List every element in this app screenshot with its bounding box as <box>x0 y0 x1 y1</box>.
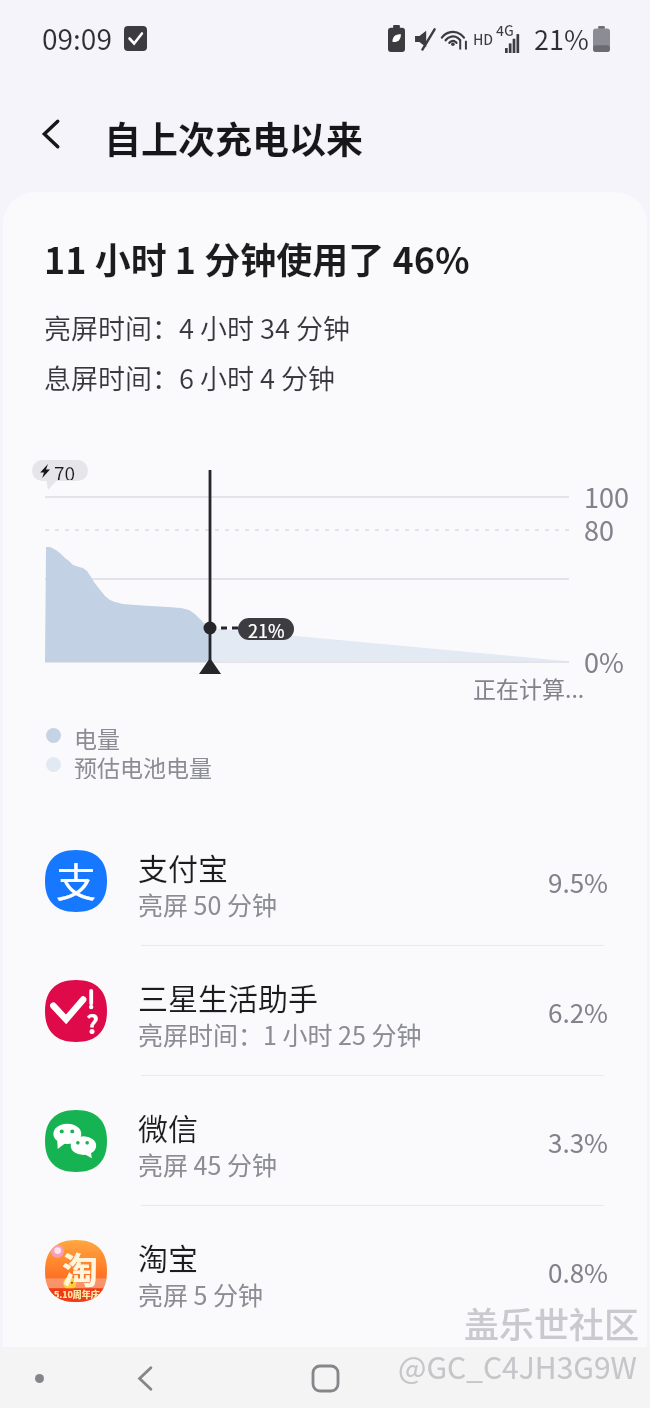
button[interactable]: Back <box>24 106 80 162</box>
staticText: 淘宝 <box>138 1235 198 1278</box>
staticText: 正在计算... <box>473 671 585 704</box>
staticText: 3.3% <box>548 1123 609 1161</box>
staticText: 0.8% <box>548 1253 609 1291</box>
staticText: 6.2% <box>548 993 609 1031</box>
staticText: 4G <box>496 20 514 40</box>
staticText: 亮屏 50 分钟 <box>138 886 277 922</box>
staticText: 自上次充电以来 <box>104 111 363 165</box>
staticText: ? <box>86 1005 99 1041</box>
staticText: 70 <box>54 460 76 480</box>
staticText: 亮屏 5 分钟 <box>138 1276 264 1312</box>
staticText: 支付宝 <box>138 845 228 888</box>
staticText: 0% <box>584 642 624 681</box>
button[interactable]: ? <box>3 946 647 1076</box>
button[interactable]: Back <box>120 1353 170 1403</box>
staticText: 100 <box>584 477 629 516</box>
button[interactable]: 支 <box>3 816 647 946</box>
staticText: 21% <box>534 19 589 58</box>
staticText: 亮屏时间：1 小时 25 分钟 <box>138 1016 422 1052</box>
button[interactable]: Recents <box>26 1365 52 1391</box>
button[interactable]: Home <box>300 1353 350 1403</box>
staticText: @GC_C4JH3G9W <box>398 1344 637 1387</box>
staticText: 09:09 <box>42 18 112 59</box>
staticText: 5.10周年庆 <box>54 1288 100 1301</box>
staticText: HD <box>473 29 494 49</box>
staticText: 9.5% <box>548 863 609 901</box>
staticText: 息屏时间：6 小时 4 分钟 <box>44 358 336 397</box>
staticText: 21% <box>248 618 285 639</box>
staticText: 三星生活助手 <box>138 975 318 1018</box>
staticText: 亮屏时间：4 小时 34 分钟 <box>44 308 351 347</box>
staticText: 淘 <box>62 1242 99 1294</box>
staticText: 11 小时 1 分钟使用了 46% <box>44 232 470 284</box>
staticText: 80 <box>584 510 614 549</box>
button[interactable]: 微信 <box>3 1076 647 1206</box>
staticText: 电量 <box>74 721 120 750</box>
button[interactable]: 淘 <box>3 1206 647 1335</box>
staticText: 微信 <box>138 1105 198 1148</box>
staticText: 盖乐世社区 <box>464 1297 640 1348</box>
staticText: 支 <box>56 851 96 909</box>
staticText: 预估电池电量 <box>74 750 212 779</box>
staticText: 亮屏 45 分钟 <box>138 1146 277 1182</box>
